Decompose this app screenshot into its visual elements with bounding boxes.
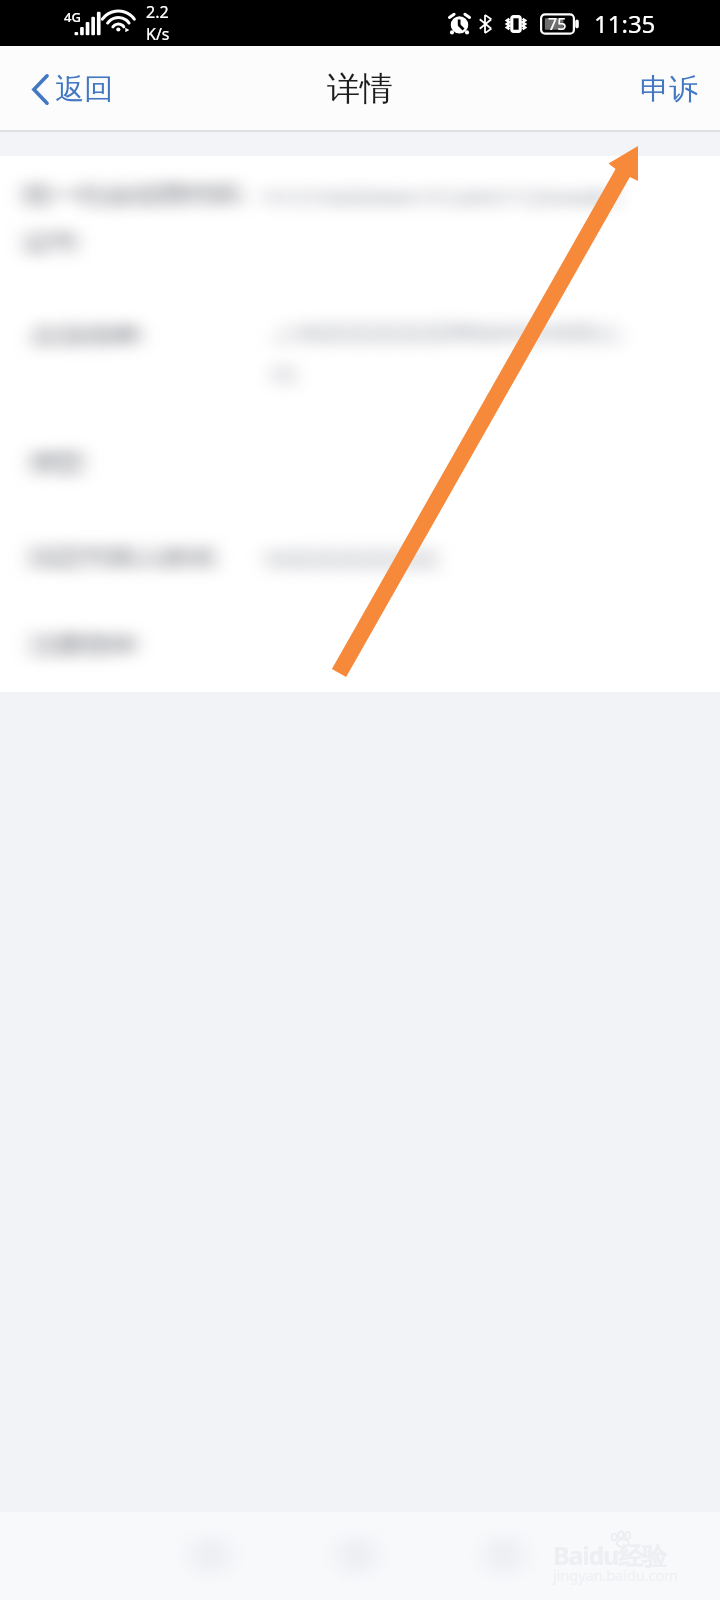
button[interactable]: 申诉: [618, 57, 720, 122]
staticText: 注册资本: [30, 628, 138, 662]
staticText: 上海某某某某某网络科技有限公: [272, 318, 622, 349]
staticText: 统一社会信用代码: [24, 178, 240, 212]
staticText: 2.2: [146, 1, 169, 23]
staticText: jingyan.baidu.com: [553, 1565, 678, 1585]
staticText: 75: [548, 13, 567, 35]
staticText: K/s: [146, 23, 170, 45]
staticText: 企业名称: [32, 318, 140, 352]
staticText: 证号: [24, 226, 78, 260]
button[interactable]: 返回: [0, 59, 131, 120]
staticText: 张某某某某某某: [264, 544, 439, 575]
staticText: 11:35: [594, 7, 656, 40]
staticText: 详情: [327, 68, 393, 110]
staticText: 返回: [55, 71, 113, 108]
staticText: 类型: [30, 446, 84, 480]
staticText: 申诉: [640, 71, 698, 108]
staticText: 法定代表人姓名: [28, 540, 217, 574]
staticText: 4G: [64, 8, 81, 26]
staticText: 司: [272, 361, 297, 392]
staticText: 91310000MA1FL8XK1Y2K4480: [264, 180, 618, 214]
staticText: Baidu经验: [553, 1538, 666, 1572]
